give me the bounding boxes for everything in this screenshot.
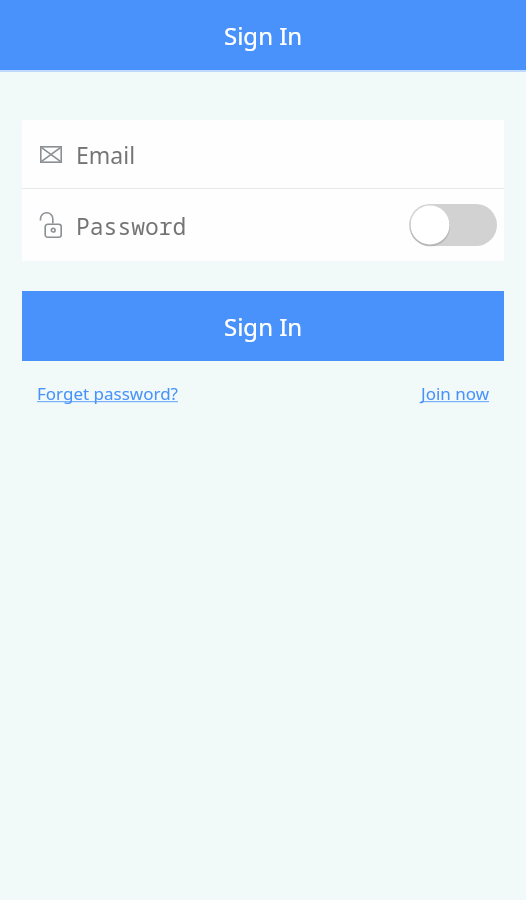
other: Password [40, 212, 62, 238]
button[interactable]: Join now [421, 376, 490, 411]
other: Email [40, 146, 62, 163]
button[interactable]: Forget password? [37, 376, 178, 411]
staticText: Sign In [224, 19, 303, 52]
button[interactable]: Email [22, 120, 504, 188]
button[interactable]: Password [22, 189, 504, 261]
staticText: Join now [421, 382, 490, 405]
staticText: Password [76, 210, 187, 241]
button[interactable]: Sign In [22, 291, 504, 361]
staticText: Forget password? [37, 382, 178, 405]
staticText: Email [76, 139, 136, 170]
staticText: Sign In [224, 310, 303, 343]
button[interactable]: Show password toggle [409, 204, 497, 246]
